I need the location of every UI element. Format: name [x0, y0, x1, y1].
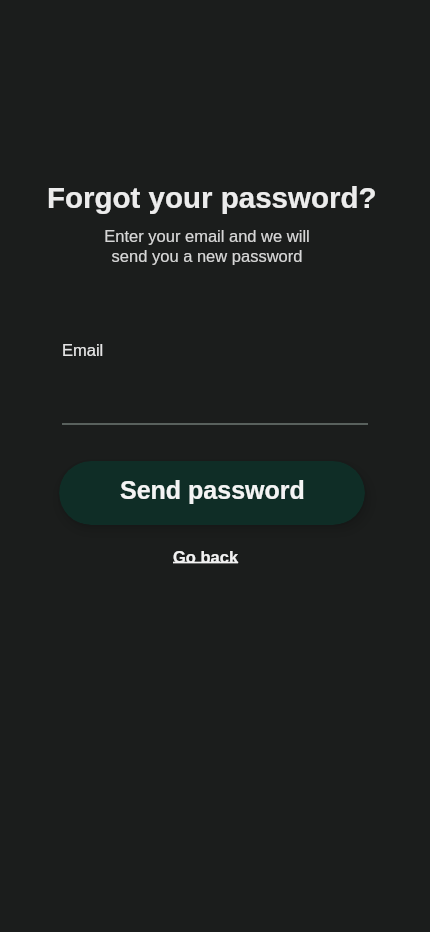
staticText: Email [62, 341, 104, 359]
staticText: Forgot your password? [47, 181, 377, 214]
staticText: Go back [173, 548, 239, 566]
button[interactable]: Go back [173, 548, 239, 566]
button[interactable]: Email [62, 336, 368, 425]
button[interactable]: Send password [59, 461, 365, 525]
staticText: Send password [120, 476, 305, 504]
staticText: Enter your email and we will send you a … [104, 227, 310, 265]
